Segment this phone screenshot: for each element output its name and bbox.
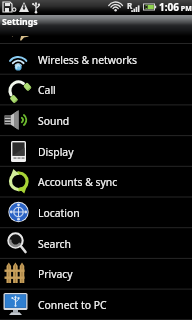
button[interactable]: Airplane mode: [0, 13, 192, 44]
staticText: PM: [179, 4, 192, 14]
button[interactable]: Location: [0, 197, 192, 228]
staticText: Sound: [38, 114, 70, 128]
button[interactable]: Wireless & networks: [0, 44, 192, 75]
button[interactable]: Search: [0, 228, 192, 259]
staticText: Privacy: [38, 267, 73, 281]
staticText: Location: [38, 206, 80, 220]
button[interactable]: Connect to PC: [0, 289, 192, 320]
staticText: Wireless & networks: [38, 53, 138, 67]
button[interactable]: Display: [0, 136, 192, 167]
button[interactable]: Privacy: [0, 258, 192, 289]
staticText: Settings: [2, 16, 38, 28]
button[interactable]: Sound: [0, 105, 192, 136]
button[interactable]: Accounts & sync: [0, 166, 192, 197]
staticText: Call: [38, 83, 56, 97]
staticText: 1:06: [159, 0, 179, 14]
staticText: Search: [38, 237, 71, 251]
staticText: Connect to PC: [38, 298, 107, 312]
staticText: R: [127, 0, 133, 11]
staticText: Airplane mode: [38, 22, 110, 36]
staticText: Display: [38, 145, 74, 159]
staticText: Accounts & sync: [38, 175, 118, 189]
button[interactable]: Call: [0, 74, 192, 105]
